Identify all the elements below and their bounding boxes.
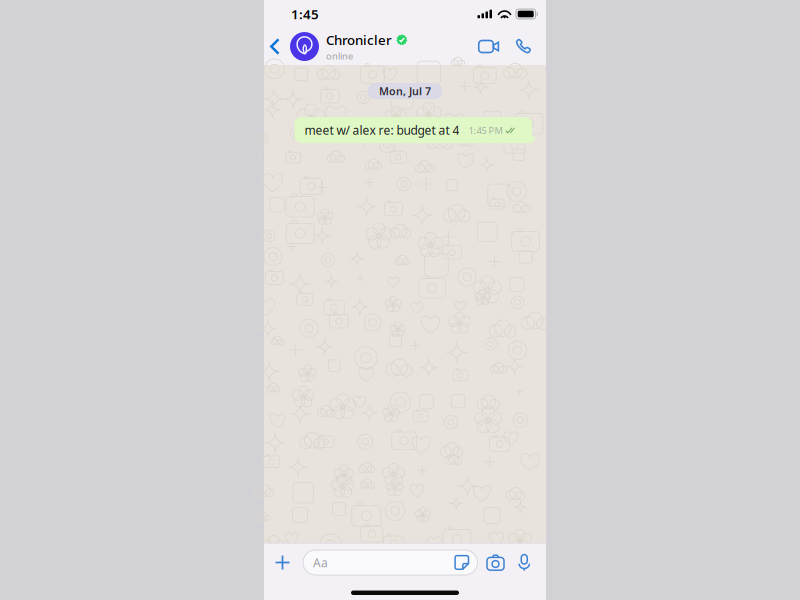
staticText: meet w/ alex re: budget at 4: [304, 122, 459, 138]
button[interactable]: Back: [264, 32, 284, 60]
button[interactable]: Attach: [269, 549, 296, 576]
button[interactable]: Voice message: [511, 548, 537, 577]
staticText: 1:45 PM: [468, 124, 502, 137]
staticText: Chronicler: [326, 31, 392, 49]
staticText: online: [326, 50, 353, 62]
button[interactable]: Voice call: [509, 30, 539, 63]
button[interactable]: Video call: [468, 32, 509, 60]
staticText: 1:45: [291, 5, 319, 23]
button[interactable]: Camera: [480, 548, 511, 577]
staticText: Mon, Jul 7: [379, 84, 431, 98]
staticText: Aa: [313, 554, 328, 570]
button[interactable]: Stickers: [454, 555, 477, 570]
